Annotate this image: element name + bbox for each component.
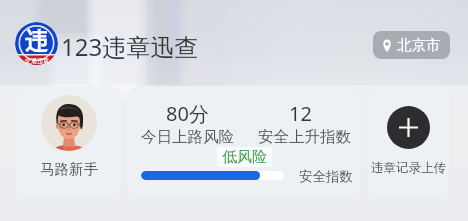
staticText: 80分: [166, 100, 209, 127]
staticText: 安全上升指数: [258, 127, 351, 147]
staticText: 交通违章: [25, 57, 49, 65]
button[interactable]: 违章记录上传: [368, 86, 449, 196]
staticText: 安全指数: [299, 168, 353, 185]
staticText: 北京市: [397, 36, 441, 54]
button[interactable]: 违章记录上传: [387, 106, 430, 149]
staticText: 低风险: [222, 148, 267, 167]
staticText: 违: [25, 27, 48, 56]
button[interactable]: 马路新手: [16, 86, 122, 196]
staticText: 12: [289, 100, 312, 127]
button[interactable]: 80分: [127, 86, 360, 196]
button[interactable]: 北京市: [373, 31, 450, 59]
staticText: 123违章迅查: [61, 30, 199, 63]
staticText: 违章记录上传: [371, 160, 446, 176]
staticText: 今日上路风险: [141, 127, 234, 147]
staticText: 马路新手: [40, 160, 98, 178]
